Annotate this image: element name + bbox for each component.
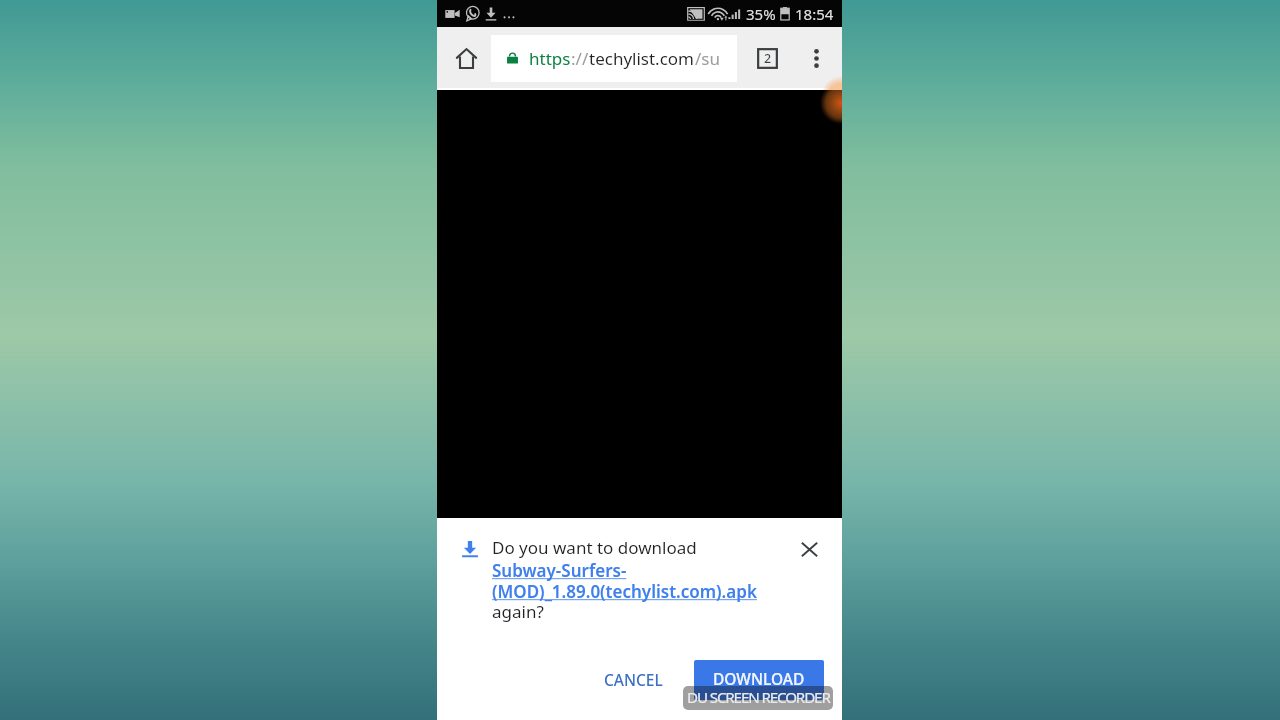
button[interactable]: DOWNLOAD (694, 660, 824, 700)
button[interactable]: Tabs (737, 27, 792, 90)
staticText: (MOD)_1.89.0(techylist.com).apk (492, 580, 757, 603)
staticText: again? (492, 600, 544, 623)
button[interactable]: Home (437, 27, 491, 90)
button[interactable]: CANCEL (589, 661, 677, 697)
button[interactable]: More options (792, 27, 841, 90)
staticText: /su (695, 47, 720, 70)
staticText: :// (571, 47, 589, 70)
staticText: Do you want to download (492, 536, 697, 559)
staticText: https (529, 47, 571, 70)
button[interactable]: https (491, 35, 737, 82)
staticText: 18:54 (795, 4, 834, 24)
staticText: Subway-Surfers- (492, 559, 627, 582)
button[interactable]: Close (790, 530, 828, 568)
staticText: 2 (764, 50, 772, 67)
staticText: 35% (746, 4, 776, 24)
staticText: techylist.com (589, 47, 695, 70)
staticText: DOWNLOAD (713, 668, 805, 689)
staticText: DU SCREEN RECORDER (687, 687, 830, 708)
staticText: CANCEL (604, 669, 663, 690)
